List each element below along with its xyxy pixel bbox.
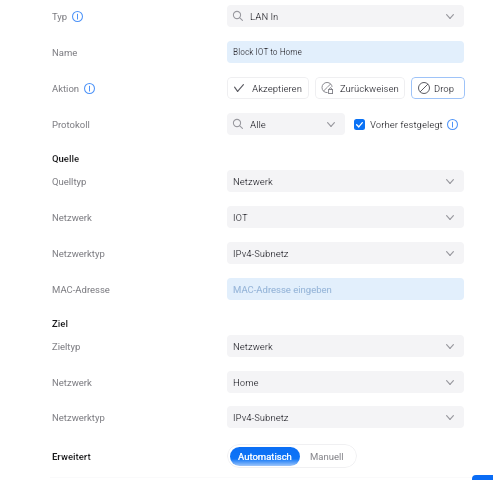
button[interactable]: Zurückweisen xyxy=(315,77,405,99)
button[interactable]: Vorher festgelegt xyxy=(354,119,458,130)
staticText: Typ xyxy=(52,11,68,22)
staticText: Netzwerk xyxy=(52,377,92,388)
button[interactable]: Block IOT to Home xyxy=(227,41,464,63)
button[interactable]: Akzeptieren xyxy=(227,77,309,99)
staticText: Zurückweisen xyxy=(340,83,399,94)
button[interactable]: Speichern xyxy=(472,475,493,480)
staticText: Home xyxy=(233,377,259,388)
staticText: Automatisch xyxy=(238,451,292,462)
staticText: Zieltyp xyxy=(52,341,81,352)
staticText: IOT xyxy=(233,212,248,223)
staticText: Quelle xyxy=(52,153,80,164)
staticText: Akzeptieren xyxy=(252,83,302,94)
staticText: Quelltyp xyxy=(52,176,87,187)
staticText: Name xyxy=(52,47,78,58)
button[interactable]: Netzwerk xyxy=(227,335,464,357)
button[interactable]: IPv4-Subnetz xyxy=(227,406,464,428)
staticText: MAC-Adresse xyxy=(52,284,110,295)
staticText: Aktion xyxy=(52,83,80,94)
staticText: LAN In xyxy=(250,11,279,22)
staticText: Vorher festgelegt xyxy=(370,119,443,130)
button[interactable]: IPv4-Subnetz xyxy=(227,242,464,264)
staticText: Netzwerk xyxy=(233,176,273,187)
staticText: Netzwerktyp xyxy=(52,248,105,259)
staticText: Netzwerk xyxy=(52,212,92,223)
staticText: IPv4-Subnetz xyxy=(233,412,289,423)
button[interactable]: Home xyxy=(227,371,464,393)
staticText: Erweitert xyxy=(52,451,91,462)
staticText: MAC-Adresse eingeben xyxy=(233,284,332,295)
button[interactable]: Drop xyxy=(411,77,465,99)
button[interactable]: IOT xyxy=(227,206,464,228)
button[interactable]: Manuell xyxy=(300,447,354,466)
staticText: Block IOT to Home xyxy=(233,47,302,57)
staticText: Netzwerktyp xyxy=(52,412,105,423)
staticText: Ziel xyxy=(52,318,68,329)
button[interactable]: Alle xyxy=(227,113,345,135)
button[interactable]: Automatisch xyxy=(230,447,300,466)
staticText: Protokoll xyxy=(52,119,90,130)
staticText: Drop xyxy=(434,83,455,94)
staticText: IPv4-Subnetz xyxy=(233,248,289,259)
staticText: Alle xyxy=(250,119,266,130)
button[interactable]: MAC-Adresse eingeben xyxy=(227,278,464,300)
button[interactable]: Netzwerk xyxy=(227,170,464,192)
staticText: Netzwerk xyxy=(233,341,273,352)
staticText: Manuell xyxy=(310,451,344,462)
button[interactable]: LAN In xyxy=(227,5,464,27)
